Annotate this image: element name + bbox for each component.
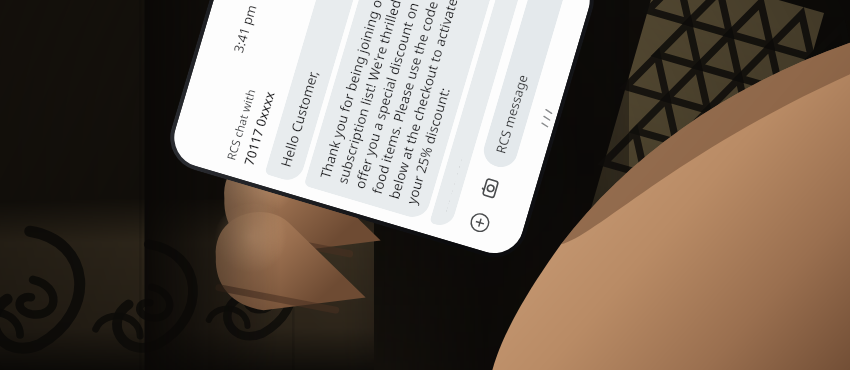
button[interactable]: Thank you for being joining our subscrip… [304, 0, 495, 221]
staticText: FOOD123. [442, 150, 464, 214]
staticText: Thank you for being joining our subscrip… [316, 0, 483, 206]
button[interactable]: FOOD123. [429, 0, 521, 229]
staticText: 70117 0xxxx [240, 89, 279, 167]
staticText: RCS chat with [223, 87, 260, 162]
staticText: 3:41 pm [229, 2, 261, 55]
button[interactable]: Hello Customer, [264, 0, 370, 184]
button[interactable]: Add attachment [459, 203, 499, 243]
button[interactable]: RCS message [480, 0, 568, 171]
button[interactable]: Camera [470, 169, 509, 208]
staticText: Hello Customer, [277, 68, 322, 169]
staticText: RCS message [491, 72, 532, 155]
